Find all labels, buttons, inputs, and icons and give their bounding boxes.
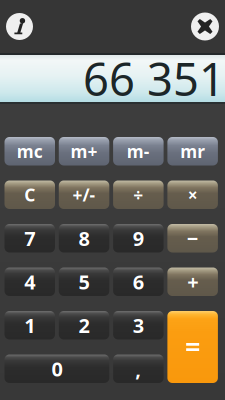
button[interactable]: 3 (113, 311, 164, 339)
staticText: C (24, 183, 35, 206)
button[interactable]: , (113, 354, 164, 383)
button[interactable]: 1 (4, 311, 55, 339)
button[interactable]: 8 (59, 224, 109, 252)
staticText: × (188, 183, 198, 206)
staticText: mr (180, 140, 205, 163)
button[interactable]: mr (167, 137, 218, 165)
staticText: 6 (133, 268, 144, 295)
staticText: m+ (71, 140, 98, 163)
button[interactable]: 6 (113, 267, 164, 296)
staticText: 0 (51, 355, 62, 382)
staticText: 4 (24, 268, 35, 295)
button[interactable]: 5 (59, 267, 109, 296)
button[interactable]: C (4, 180, 55, 209)
staticText: 66 351 (83, 48, 225, 109)
staticText: 7 (24, 225, 35, 252)
button[interactable]: 4 (4, 267, 55, 296)
button[interactable]: ÷ (113, 180, 164, 209)
staticText: , (135, 355, 141, 382)
staticText: +/- (73, 183, 96, 206)
button[interactable]: 7 (4, 224, 55, 252)
staticText: ÷ (133, 183, 143, 206)
staticText: mc (17, 140, 43, 163)
button[interactable]: Info (6, 13, 33, 40)
button[interactable]: m- (113, 137, 164, 165)
button[interactable]: × (167, 180, 218, 209)
button[interactable]: mc (4, 137, 55, 165)
staticText: m- (127, 140, 150, 163)
button[interactable]: m+ (59, 137, 109, 165)
button[interactable]: 2 (59, 311, 109, 339)
button[interactable] (167, 311, 218, 383)
button[interactable]: 9 (113, 224, 164, 252)
button[interactable]: 0 (4, 354, 109, 383)
staticText: 9 (133, 225, 144, 252)
staticText: 1 (24, 312, 35, 339)
button[interactable]: Close (191, 12, 219, 40)
staticText: 2 (79, 312, 90, 339)
staticText: 3 (133, 312, 144, 339)
staticText: − (187, 225, 199, 252)
staticText: 8 (79, 225, 90, 252)
button[interactable]: − (167, 224, 218, 252)
button[interactable]: + (167, 267, 218, 296)
staticText: 5 (79, 268, 90, 295)
button[interactable]: +/- (59, 180, 109, 209)
staticText: + (187, 268, 198, 295)
